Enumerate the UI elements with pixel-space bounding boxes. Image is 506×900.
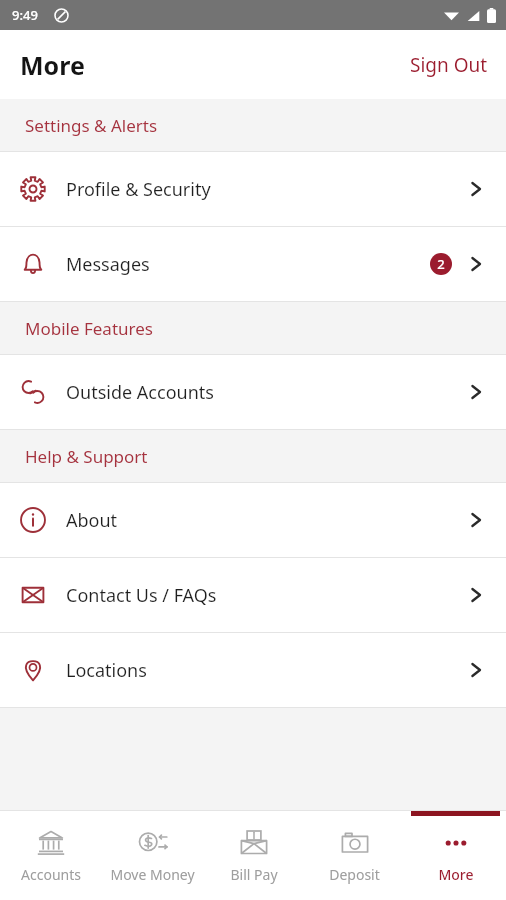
staticText: Help & Support: [25, 445, 148, 468]
button[interactable]: About: [0, 483, 506, 557]
button[interactable]: Locations: [0, 633, 506, 707]
staticText: Locations: [66, 658, 466, 683]
button[interactable]: Sign Out: [392, 40, 506, 90]
staticText: Accounts: [21, 865, 81, 884]
staticText: More: [20, 48, 85, 82]
button[interactable]: Accounts: [0, 811, 102, 900]
staticText: Deposit: [329, 865, 380, 884]
staticText: Settings & Alerts: [25, 114, 158, 137]
staticText: Sign Out: [410, 52, 488, 78]
staticText: 9:49: [12, 6, 38, 24]
button[interactable]: Outside Accounts: [0, 355, 506, 429]
button[interactable]: Profile & Security: [0, 152, 506, 226]
staticText: More: [438, 865, 474, 884]
staticText: Profile & Security: [66, 177, 466, 202]
staticText: Contact Us / FAQs: [66, 583, 466, 608]
staticText: Outside Accounts: [66, 380, 466, 405]
staticText: About: [66, 508, 466, 533]
button[interactable]: Messages: [0, 227, 506, 301]
button[interactable]: More: [405, 811, 506, 900]
button[interactable]: Contact Us / FAQs: [0, 558, 506, 632]
staticText: Messages: [66, 252, 430, 277]
button[interactable]: Move Money: [102, 811, 203, 900]
button[interactable]: Deposit: [304, 811, 405, 900]
button[interactable]: Bill Pay: [203, 811, 304, 900]
staticText: Mobile Features: [25, 317, 153, 340]
staticText: Move Money: [110, 865, 195, 884]
staticText: 2: [437, 255, 445, 273]
staticText: Bill Pay: [230, 865, 278, 884]
